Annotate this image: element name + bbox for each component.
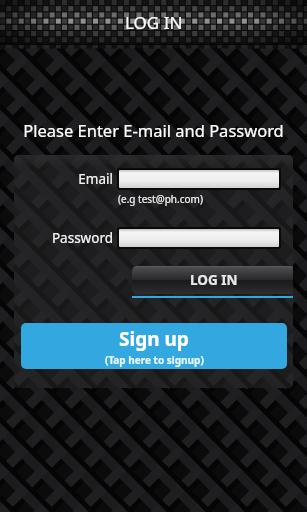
button[interactable]: Sign up — [21, 323, 287, 369]
staticText: Please Enter E-mail and Password — [0, 119, 307, 141]
staticText: LOG IN — [190, 271, 238, 289]
staticText: (e.g test@ph.com) — [118, 192, 203, 206]
button[interactable]: Password input — [119, 229, 279, 247]
button[interactable]: Email input — [119, 170, 279, 188]
staticText: LOG IN — [125, 11, 183, 34]
staticText: (Tap here to signup) — [105, 353, 204, 367]
staticText: Password — [14, 229, 113, 247]
button[interactable]: LOG IN — [132, 266, 293, 298]
staticText: Email — [14, 170, 113, 188]
staticText: Sign up — [119, 326, 189, 352]
